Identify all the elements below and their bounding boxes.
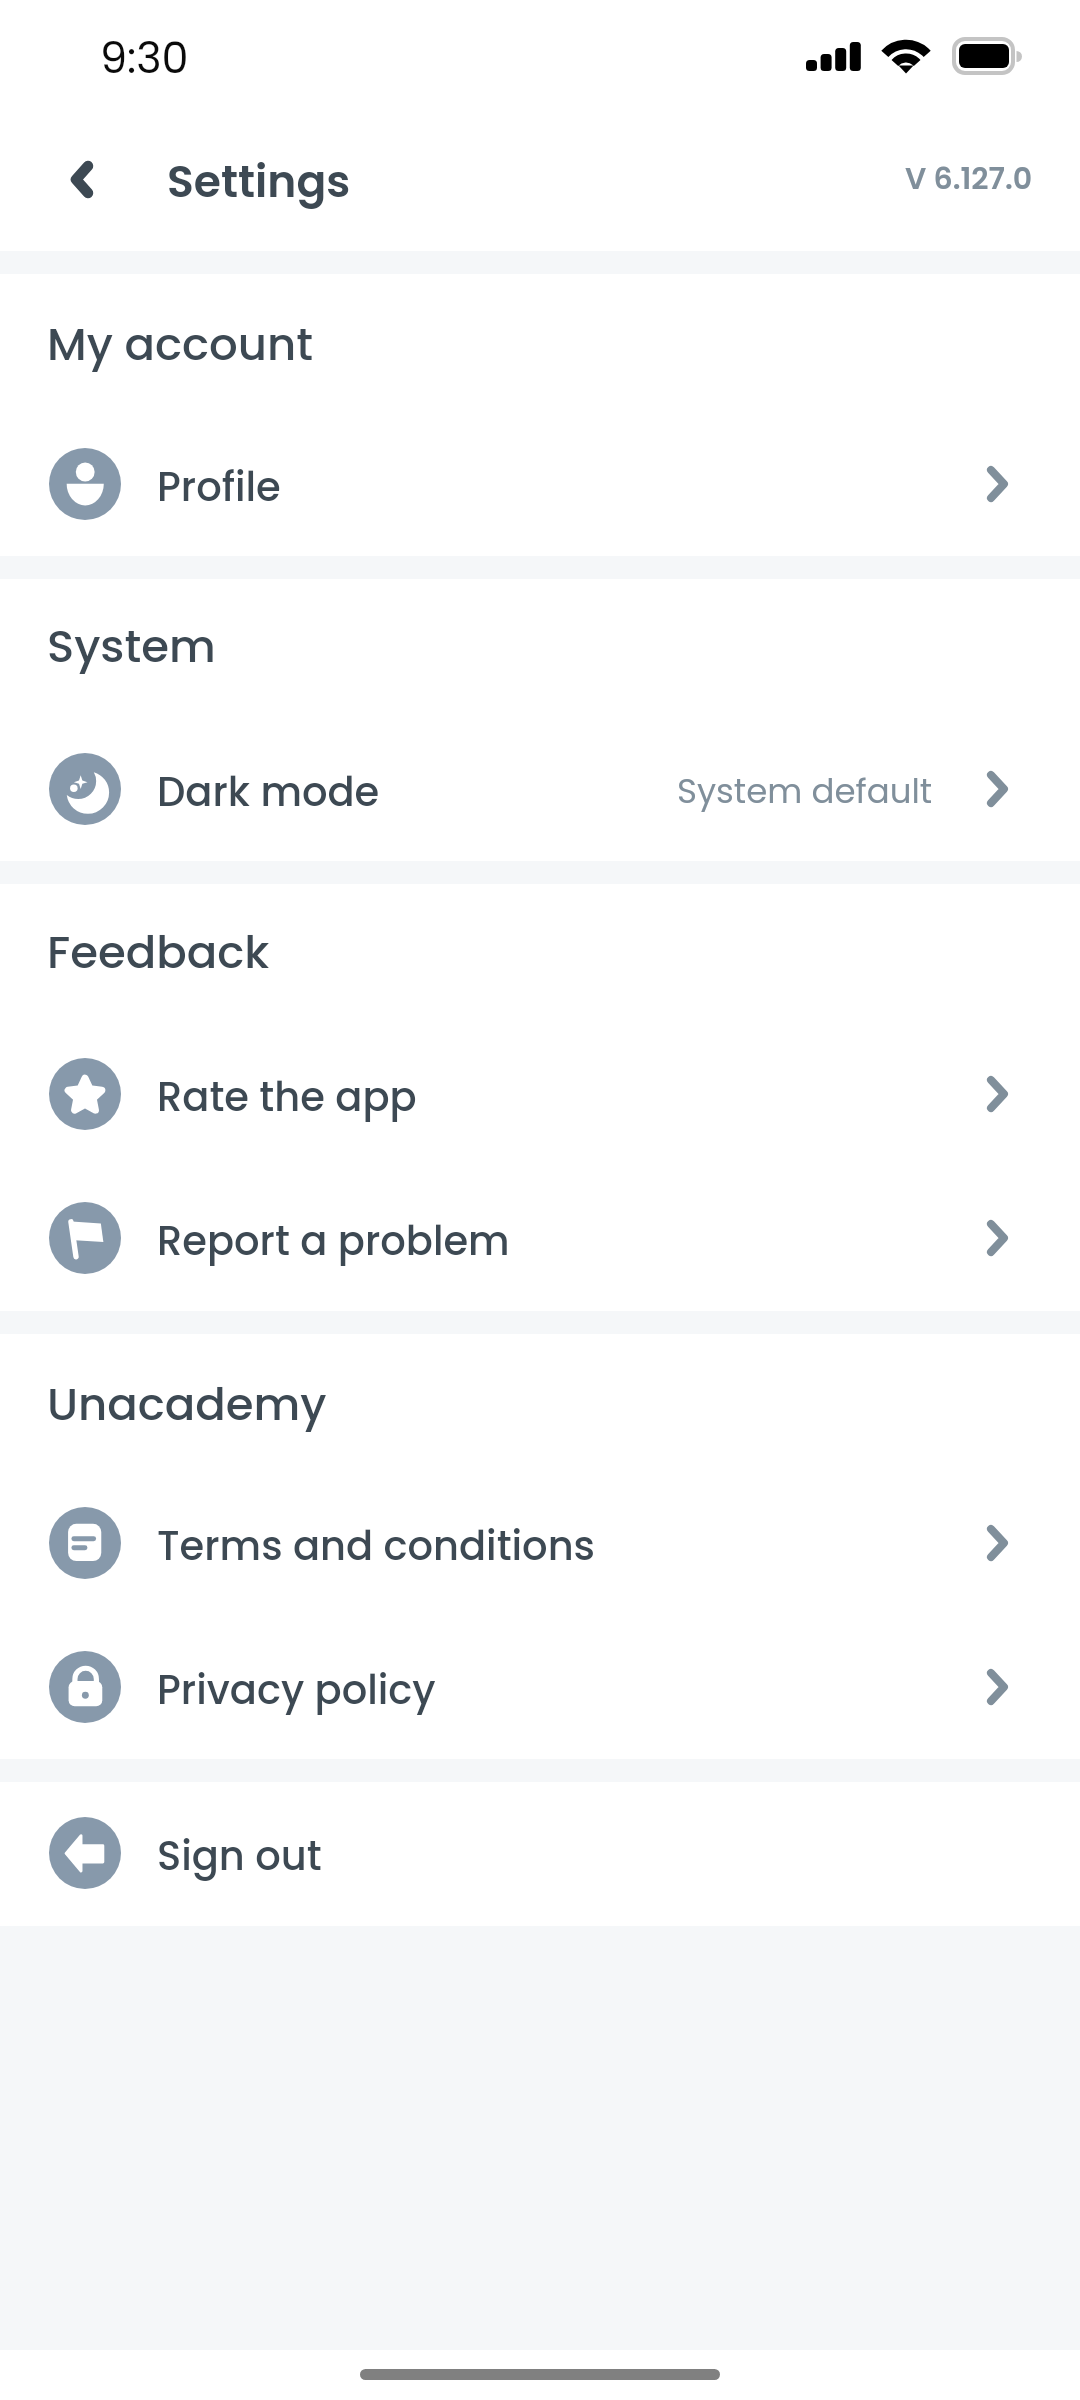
staticText: Sign out: [157, 1828, 322, 1884]
staticText: Report a problem: [157, 1213, 510, 1269]
staticText: Dark mode: [157, 764, 380, 820]
staticText: System: [47, 615, 216, 678]
button[interactable]: Dark mode: [0, 717, 1080, 861]
staticText: 9:30: [100, 28, 189, 88]
button[interactable]: Terms and conditions: [0, 1471, 1080, 1615]
button[interactable]: Report a problem: [0, 1166, 1080, 1310]
staticText: My account: [47, 313, 313, 376]
button[interactable]: Privacy policy: [0, 1615, 1080, 1759]
staticText: Terms and conditions: [157, 1518, 595, 1574]
staticText: Feedback: [47, 921, 270, 984]
button[interactable]: Back: [34, 131, 130, 227]
staticText: System default: [677, 767, 933, 815]
staticText: V 6.127.0: [905, 158, 1033, 200]
staticText: Profile: [157, 459, 281, 515]
staticText: Privacy policy: [157, 1662, 436, 1718]
staticText: Rate the app: [157, 1069, 417, 1125]
button[interactable]: Rate the app: [0, 1022, 1080, 1166]
button[interactable]: Profile: [0, 412, 1080, 556]
button[interactable]: Sign out: [0, 1781, 1080, 1925]
staticText: Unacademy: [47, 1373, 327, 1436]
staticText: Settings: [167, 151, 351, 213]
